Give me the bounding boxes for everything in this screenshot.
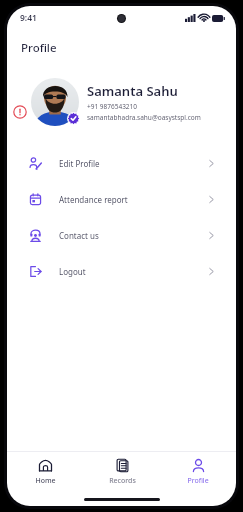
- button[interactable]: Edit Profile: [7, 154, 236, 172]
- button[interactable]: Records: [84, 452, 160, 492]
- button[interactable]: Attendance report: [7, 190, 236, 208]
- other: Alert: [13, 105, 27, 119]
- staticText: Contact us: [59, 230, 99, 241]
- button[interactable]: Contact us: [7, 226, 236, 244]
- button[interactable]: Profile: [160, 452, 236, 492]
- staticText: +91 9876543210: [87, 102, 138, 111]
- staticText: Records: [109, 476, 136, 486]
- button[interactable]: Logout: [7, 262, 236, 280]
- staticText: samantabhadra.sahu@oasystspl.com: [87, 113, 201, 122]
- staticText: Profile: [21, 40, 57, 56]
- staticText: Edit Profile: [59, 158, 100, 169]
- staticText: Samanta Sahu: [87, 82, 178, 100]
- staticText: Home: [35, 476, 56, 486]
- button[interactable]: Home: [7, 452, 84, 492]
- staticText: 9:41: [20, 12, 37, 24]
- staticText: Profile: [187, 476, 209, 486]
- staticText: Logout: [59, 266, 86, 277]
- staticText: Attendance report: [59, 194, 128, 205]
